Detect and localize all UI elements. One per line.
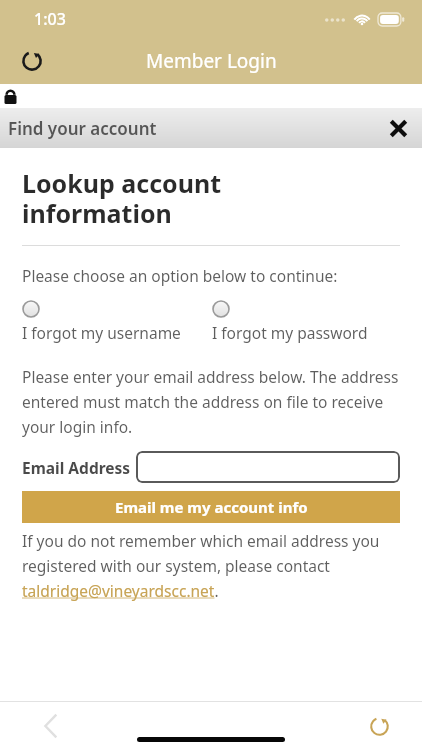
staticText: Find your account xyxy=(8,117,157,140)
button[interactable]: I forgot my password xyxy=(212,300,400,343)
staticText: Please choose an option below to continu… xyxy=(22,265,338,286)
staticText: Member Login xyxy=(146,48,277,74)
staticText: I forgot my password xyxy=(212,322,368,343)
staticText: Email Address xyxy=(22,457,131,478)
button[interactable]: I forgot my username xyxy=(22,300,212,343)
button[interactable]: Refresh xyxy=(358,705,400,747)
staticText: Please enter your email address below. T… xyxy=(22,366,400,437)
staticText: I forgot my username xyxy=(22,322,181,343)
staticText: Email me my account info xyxy=(115,497,308,517)
button[interactable]: Email Address input xyxy=(136,451,400,483)
staticText: Lookup account information xyxy=(22,166,222,231)
button[interactable]: Close xyxy=(380,110,416,146)
button[interactable]: Back xyxy=(30,705,72,747)
button[interactable]: Refresh xyxy=(12,41,52,81)
button[interactable]: Email me my account info xyxy=(22,491,400,523)
button[interactable]: If you do not remember which email addre… xyxy=(22,530,400,601)
staticText: 1:03 xyxy=(34,8,66,30)
